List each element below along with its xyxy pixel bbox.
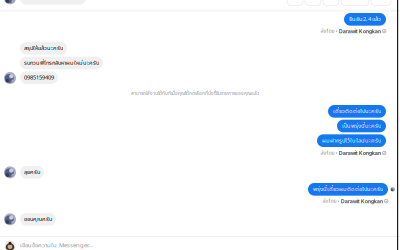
button[interactable]: พรุ่งนี้เดี๋ยวผมติดต่อไปนะครับ: [308, 183, 388, 196]
staticText: ส่งโดย: [320, 149, 334, 157]
button[interactable]: ผมฝากรูปไว้ในไลน์นะครับ: [317, 134, 386, 147]
button[interactable]: เขียนข้อความใน Messenger...: [5, 239, 400, 250]
staticText: พรุ่งนี้เดี๋ยวผมติดต่อไปนะครับ: [313, 185, 383, 194]
staticText: ขอบคุณครับ: [24, 215, 52, 224]
staticText: รบกวนพี่โทรกลับหาผมใหม่นะครับ: [24, 59, 99, 67]
staticText: เป็นพรุ่งนี้นะครับ: [342, 122, 381, 130]
button[interactable]: เป็นพรุ่งนี้นะครับ: [337, 120, 386, 132]
button[interactable]: Quick reply: [371, 0, 391, 5]
staticText: สามารถใช้งานได้ทันทีเมื่อคุณได้กดเลือกที…: [131, 90, 259, 97]
staticText: 0985159409: [24, 73, 54, 82]
staticText: ผมฝากรูปไว้ในไลน์นะครับ: [322, 136, 381, 145]
button[interactable]: Quick reply: [287, 0, 303, 5]
staticText: ยืนยัน2.4 แล้ว: [349, 15, 381, 24]
staticText: เดี๋ยวติดต่อไปนะครับ: [333, 107, 381, 116]
staticText: สรุปให้แล้วนะครับ: [24, 44, 63, 53]
button[interactable]: เดี๋ยวติดต่อไปนะครับ: [328, 105, 386, 118]
button[interactable]: Quick reply: [323, 0, 339, 5]
button[interactable]: ยืนยัน2.4 แล้ว: [344, 13, 386, 26]
button[interactable]: Quick reply: [341, 0, 369, 5]
staticText: Darawit Kongkan: [341, 198, 383, 204]
staticText: Darawit Kongkan: [339, 28, 381, 34]
button[interactable]: Quick reply: [305, 0, 321, 5]
staticText: เขียนข้อความใน Messenger...: [20, 241, 94, 250]
staticText: ส่งโดย: [322, 197, 336, 205]
staticText: Darawit Kongkan: [339, 150, 381, 156]
staticText: ส่งโดย: [320, 27, 334, 35]
staticText: ลุยครับ: [24, 168, 40, 177]
